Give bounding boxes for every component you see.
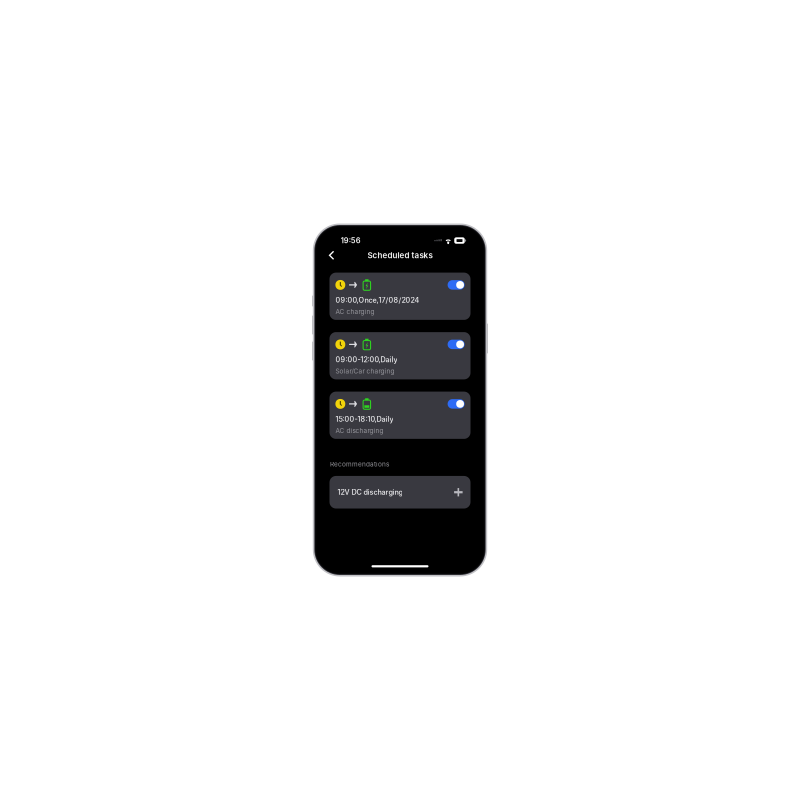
staticText: 09:00-12:00,Daily	[335, 355, 397, 364]
button[interactable]: Back	[325, 248, 338, 262]
staticText: 12V DC discharging	[337, 488, 402, 497]
staticText: 09:00,Once,17/08/2024	[335, 296, 419, 304]
button[interactable]: Toggle 15:00-18:10,Daily	[448, 399, 465, 409]
button[interactable]: 09:00-12:00,Daily	[329, 332, 470, 379]
button[interactable]: Toggle 09:00,Once,17/08/2024	[448, 280, 465, 290]
staticText: Solar/Car charging	[335, 367, 394, 375]
staticText: Scheduled tasks	[367, 250, 432, 260]
staticText: 15:00-18:10,Daily	[335, 415, 393, 423]
staticText: AC charging	[335, 308, 374, 315]
button[interactable]: 09:00,Once,17/08/2024	[329, 273, 470, 320]
staticText: Recommendations	[330, 460, 389, 468]
button[interactable]: 15:00-18:10,Daily	[329, 392, 470, 439]
staticText: AC discharging	[335, 427, 383, 434]
button[interactable]: Toggle 09:00-12:00,Daily	[448, 340, 465, 349]
staticText: 19:56	[341, 236, 361, 245]
button[interactable]: 12V DC discharging	[329, 476, 470, 508]
